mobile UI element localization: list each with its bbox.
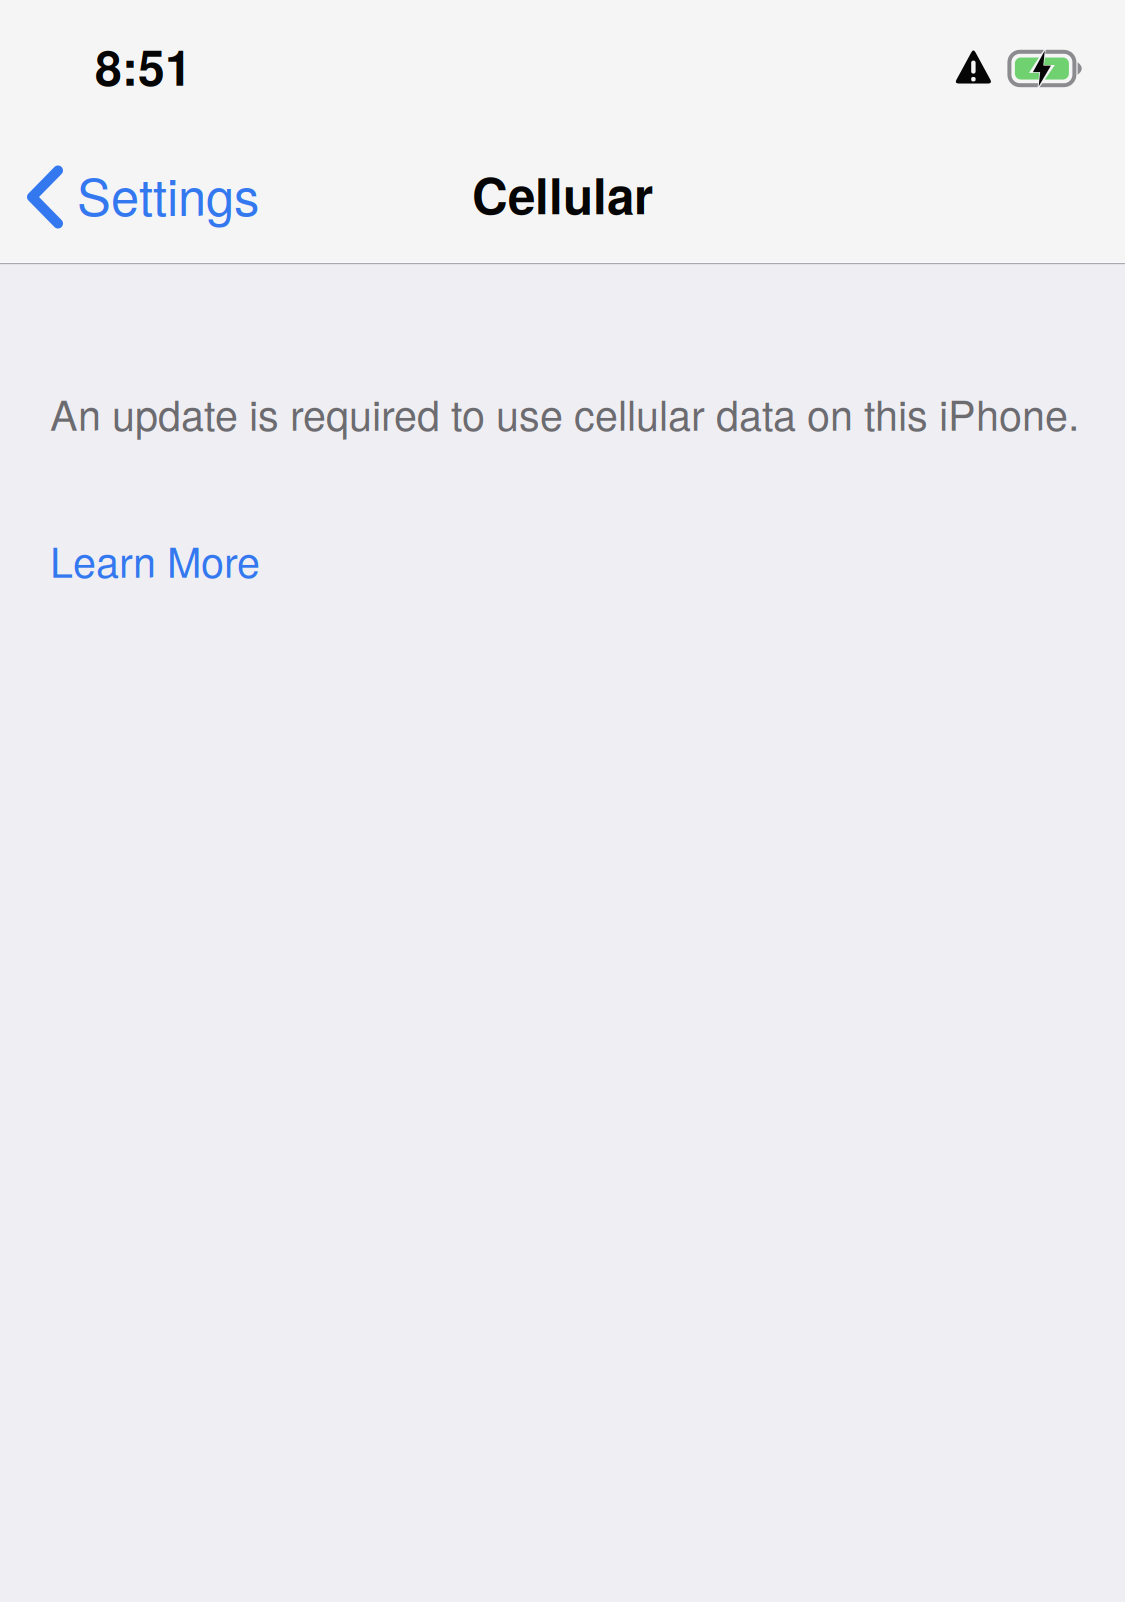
button[interactable]: Settings (0, 131, 285, 262)
staticText: Learn More (50, 530, 260, 590)
staticText: Cellular (472, 159, 653, 229)
staticText: Settings (77, 158, 259, 230)
button[interactable]: Learn More (50, 494, 290, 626)
staticText: An update is required to use cellular da… (50, 383, 1079, 442)
staticText: 8:51 (95, 32, 192, 100)
